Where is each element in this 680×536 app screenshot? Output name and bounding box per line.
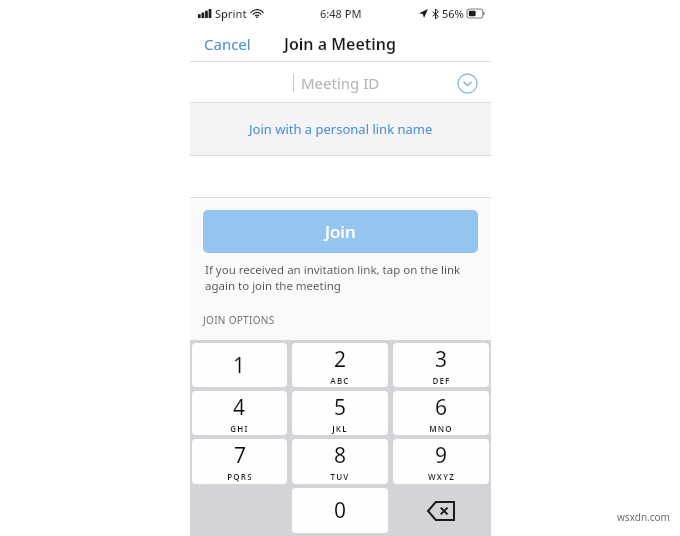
staticText: 3 bbox=[435, 345, 448, 374]
staticText: Join a Meeting bbox=[284, 33, 397, 55]
staticText: wsxdn.com bbox=[617, 510, 670, 524]
staticText: 6:48 PM bbox=[320, 6, 362, 21]
staticText: If you received an invitation link, tap … bbox=[205, 262, 476, 293]
button[interactable]: 0 bbox=[292, 488, 388, 533]
staticText: 1 bbox=[233, 351, 246, 380]
staticText: Join bbox=[325, 220, 356, 243]
button[interactable]: Join bbox=[203, 210, 478, 253]
button[interactable]: 6 bbox=[393, 391, 489, 435]
button[interactable]: 2 bbox=[292, 343, 388, 387]
staticText: 0 bbox=[334, 496, 347, 525]
staticText: 4 bbox=[233, 393, 246, 422]
staticText: PQRS bbox=[227, 471, 253, 482]
staticText: Meeting ID bbox=[301, 73, 380, 93]
button[interactable]: Meeting ID bbox=[190, 62, 491, 103]
staticText: 56% bbox=[442, 6, 464, 21]
button[interactable]: Show meeting ID options bbox=[452, 68, 482, 98]
staticText: 6 bbox=[435, 393, 448, 422]
staticText: 9 bbox=[435, 441, 448, 470]
button[interactable]: 1 bbox=[192, 343, 287, 387]
staticText: Cancel bbox=[204, 34, 251, 54]
staticText: DEF bbox=[432, 375, 451, 386]
staticText: 5 bbox=[334, 393, 347, 422]
staticText: MNO bbox=[429, 423, 453, 434]
staticText: 7 bbox=[234, 441, 247, 470]
staticText: JOIN OPTIONS bbox=[203, 313, 275, 327]
staticText: GHI bbox=[230, 423, 249, 434]
button[interactable]: 4 bbox=[192, 391, 287, 435]
button[interactable]: 8 bbox=[292, 439, 388, 484]
button[interactable]: Join with a personal link name bbox=[190, 103, 491, 155]
staticText: 2 bbox=[334, 345, 347, 374]
staticText: Sprint bbox=[215, 6, 247, 21]
button[interactable]: 9 bbox=[393, 439, 489, 484]
staticText: ABC bbox=[330, 375, 350, 386]
staticText: 8 bbox=[334, 441, 347, 470]
button[interactable]: 5 bbox=[292, 391, 388, 435]
staticText: JKL bbox=[332, 423, 348, 434]
staticText: Join with a personal link name bbox=[249, 120, 433, 138]
button[interactable]: 3 bbox=[393, 343, 489, 387]
staticText: TUV bbox=[330, 471, 350, 482]
button[interactable]: Delete bbox=[393, 488, 489, 533]
staticText: WXYZ bbox=[428, 471, 455, 482]
button[interactable]: Cancel bbox=[190, 28, 265, 60]
button[interactable]: 7 bbox=[192, 439, 287, 484]
